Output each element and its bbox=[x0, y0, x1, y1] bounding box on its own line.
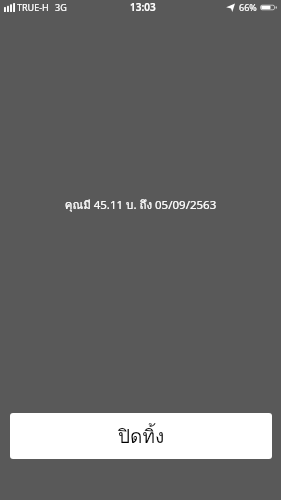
staticText: 66% bbox=[239, 1, 257, 13]
staticText: 3G bbox=[55, 1, 67, 13]
other: Battery 66 percent bbox=[260, 4, 277, 11]
other: Location services active bbox=[226, 3, 235, 12]
staticText: TRUE-H bbox=[17, 1, 49, 13]
staticText: ปิดทิ้ง bbox=[118, 421, 165, 451]
other: Cellular signal strength bbox=[4, 3, 15, 12]
staticText: 13:03 bbox=[130, 0, 156, 14]
button[interactable]: ปิดทิ้ง bbox=[10, 413, 272, 459]
staticText: คุณมี 45.11 บ. ถึง 05/09/2563 bbox=[0, 196, 281, 214]
